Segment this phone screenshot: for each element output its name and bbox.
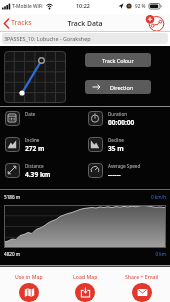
staticText: 3PASSES_10: Lobuche - Gorakshep <box>4 35 91 42</box>
staticText: Incline <box>25 137 40 143</box>
button[interactable]: 3PASSES_10: Lobuche - Gorakshep <box>2 33 168 44</box>
staticText: Direction <box>110 84 134 91</box>
staticText: T-Mobile WiFi <box>12 3 43 10</box>
staticText: Average Speed <box>108 163 141 169</box>
button[interactable] <box>144 15 166 33</box>
staticText: 35 m <box>108 144 124 153</box>
button[interactable]: Track Colour <box>85 53 151 67</box>
staticText: 10:22 <box>76 2 90 9</box>
staticText: Track Colour <box>102 57 134 64</box>
button[interactable]: Load Map <box>57 267 113 302</box>
button[interactable]: Tracks <box>3 14 32 32</box>
staticText: 5186 m <box>4 194 21 200</box>
staticText: Duration <box>108 111 128 117</box>
staticText: ------ <box>108 170 121 179</box>
button[interactable]: Use in Map <box>0 267 57 302</box>
staticText: 0 km <box>126 251 166 257</box>
staticText: Use in Map <box>15 273 43 280</box>
staticText: Tracks <box>11 18 32 28</box>
staticText: Date <box>25 111 36 117</box>
staticText: Share + Email <box>125 273 159 280</box>
button[interactable]: Share + Email <box>113 267 170 302</box>
staticText: Track Data <box>0 19 170 28</box>
staticText: 92 % <box>135 3 146 9</box>
staticText: Distance <box>25 163 44 169</box>
staticText: Load Map <box>73 273 98 280</box>
button[interactable]: Direction <box>85 80 151 94</box>
staticText: 272 m <box>25 144 45 153</box>
staticText: 4.39 km <box>25 170 51 179</box>
staticText: 4820 m <box>4 251 21 257</box>
staticText: Decline <box>108 137 124 143</box>
staticText: 0 km/h <box>126 194 166 200</box>
staticText: 00:00:00 <box>108 118 135 127</box>
